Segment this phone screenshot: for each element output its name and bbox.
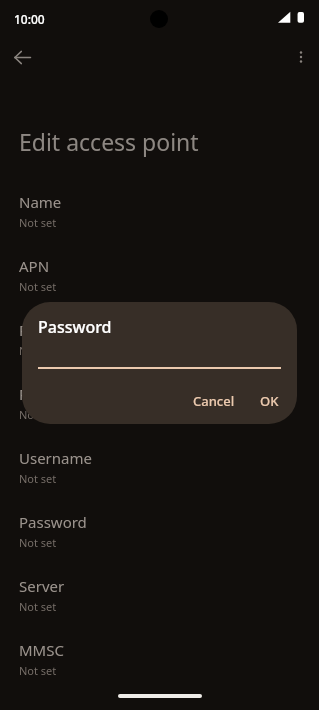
button[interactable]: Password — [0, 509, 319, 573]
staticText: Password — [38, 316, 112, 338]
button[interactable]: APN — [0, 253, 319, 317]
button[interactable]: Back — [6, 41, 38, 73]
button[interactable]: More options — [285, 41, 317, 73]
button[interactable]: MMSC — [0, 637, 319, 701]
staticText: Not set — [19, 471, 57, 486]
staticText: Cancel — [193, 392, 235, 410]
staticText: Server — [19, 576, 65, 596]
staticText: Proxy — [19, 320, 59, 340]
staticText: Not set — [19, 535, 57, 550]
staticText: APN — [19, 256, 50, 276]
staticText: Not set — [19, 407, 57, 422]
button[interactable]: Username — [0, 445, 319, 509]
staticText: Not set — [19, 599, 57, 614]
button[interactable]: Cancel — [182, 386, 246, 416]
button[interactable]: Name — [0, 189, 319, 253]
staticText: Edit access point — [19, 126, 199, 157]
button[interactable]: Proxy — [0, 317, 319, 381]
staticText: Not set — [19, 663, 57, 678]
staticText: 10:00 — [14, 11, 45, 27]
button[interactable]: Port — [0, 381, 319, 445]
staticText: Not set — [19, 215, 57, 230]
staticText: Not set — [19, 279, 57, 294]
staticText: Name — [19, 192, 62, 212]
staticText: Port — [19, 384, 49, 404]
staticText: MMSC — [19, 640, 64, 660]
staticText: Password — [19, 512, 87, 532]
staticText: Not set — [19, 343, 57, 358]
staticText: Username — [19, 448, 92, 468]
button[interactable]: Server — [0, 573, 319, 637]
staticText: OK — [260, 392, 279, 410]
button[interactable]: OK — [249, 386, 290, 416]
